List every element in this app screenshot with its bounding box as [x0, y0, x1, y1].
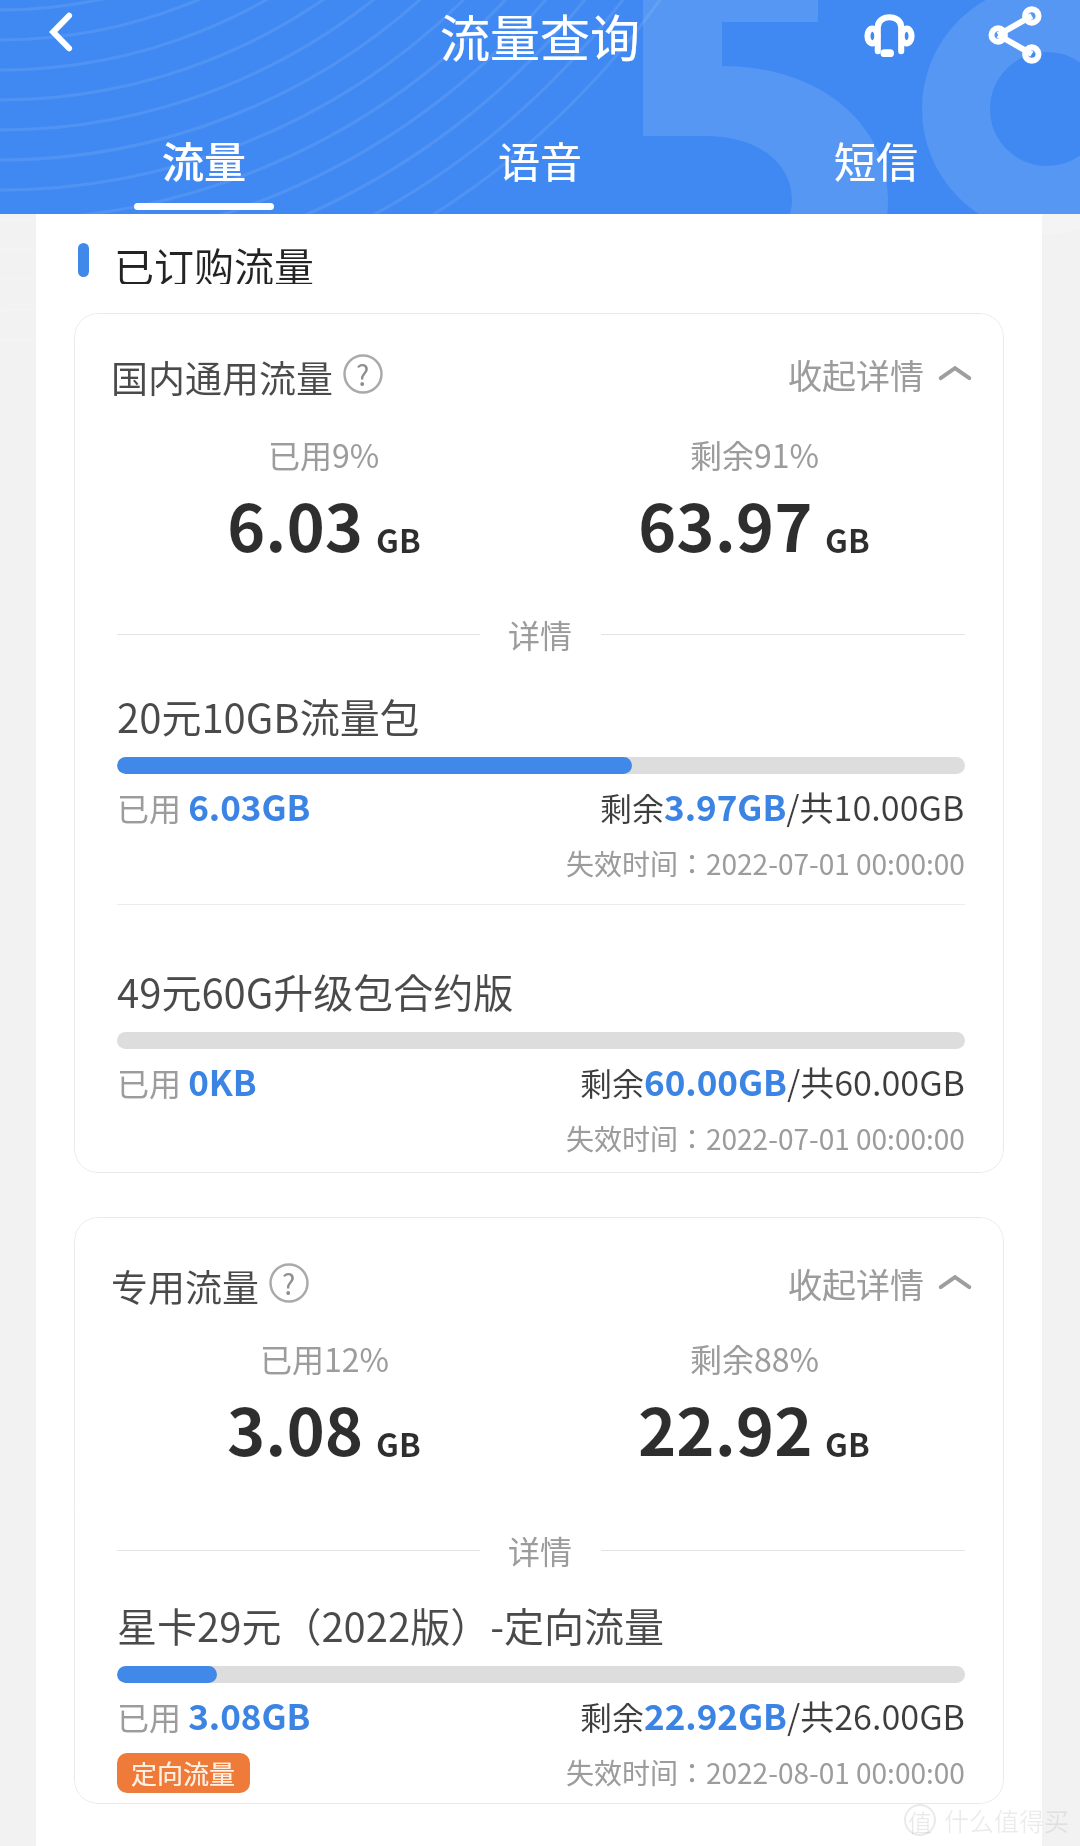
staticText: 剩余3.97GB/共10.00GB — [600, 780, 965, 831]
staticText: 63.97 — [638, 477, 813, 571]
staticText: 值 — [908, 1804, 932, 1836]
staticText: ? — [356, 354, 370, 394]
staticText: 失效时间：2022-08-01 00:00:00 — [566, 1752, 965, 1793]
staticText: 流量查询 — [440, 0, 640, 71]
staticText: 6.03 — [227, 477, 364, 571]
staticText: 已用12% — [260, 1335, 389, 1381]
staticText: GB — [376, 1420, 421, 1466]
button[interactable]: Help — [269, 1263, 309, 1303]
staticText: GB — [825, 516, 870, 562]
staticText: 定向流量 — [131, 1754, 236, 1792]
staticText: 已用 6.03GB — [117, 780, 311, 831]
staticText: GB — [825, 1420, 870, 1466]
staticText: 49元60G升级包合约版 — [117, 962, 514, 1020]
staticText: 短信 — [834, 129, 919, 190]
button[interactable]: 语音 — [372, 118, 708, 214]
button[interactable]: 收起详情 — [788, 1259, 972, 1307]
staticText: 22.92 — [638, 1381, 813, 1475]
staticText: 什么值得买 — [944, 1802, 1070, 1838]
button[interactable]: Help — [343, 354, 383, 394]
staticText: 剩余91% — [690, 431, 819, 477]
staticText: 剩余22.92GB/共26.00GB — [580, 1689, 965, 1740]
button[interactable]: 星卡29元（2022版）-定向流量 — [74, 1596, 1004, 1793]
staticText: 已订购流量 — [114, 236, 314, 284]
staticText: 详情 — [508, 1527, 573, 1573]
staticText: 星卡29元（2022版）-定向流量 — [117, 1596, 665, 1654]
staticText: GB — [376, 516, 421, 562]
button[interactable]: 短信 — [708, 118, 1044, 214]
staticText: 国内通用流量 — [111, 350, 333, 398]
staticText: 已用 0KB — [117, 1055, 257, 1106]
button[interactable]: Back — [23, 0, 101, 71]
button[interactable]: 流量 — [36, 118, 372, 214]
staticText: 流量 — [162, 129, 247, 190]
staticText: 语音 — [498, 129, 583, 190]
staticText: 已用 3.08GB — [117, 1689, 311, 1740]
button[interactable]: 49元60G升级包合约版 — [74, 962, 1004, 1159]
staticText: 专用流量 — [111, 1259, 259, 1307]
button[interactable]: Share — [976, 0, 1054, 74]
staticText: 20元10GB流量包 — [117, 687, 420, 745]
staticText: ? — [282, 1263, 296, 1303]
staticText: 3.08 — [227, 1381, 364, 1475]
staticText: 剩余88% — [690, 1335, 819, 1381]
staticText: 剩余60.00GB/共60.00GB — [580, 1055, 965, 1106]
staticText: 失效时间：2022-07-01 00:00:00 — [566, 843, 965, 884]
staticText: 收起详情 — [788, 350, 924, 398]
staticText: 失效时间：2022-07-01 00:00:00 — [566, 1118, 965, 1159]
staticText: 收起详情 — [788, 1259, 924, 1307]
staticText: 已用9% — [268, 431, 380, 477]
button[interactable]: 收起详情 — [788, 350, 972, 398]
button[interactable]: 20元10GB流量包 — [74, 687, 1004, 884]
button[interactable]: Customer service — [850, 0, 928, 74]
staticText: 详情 — [508, 611, 573, 657]
